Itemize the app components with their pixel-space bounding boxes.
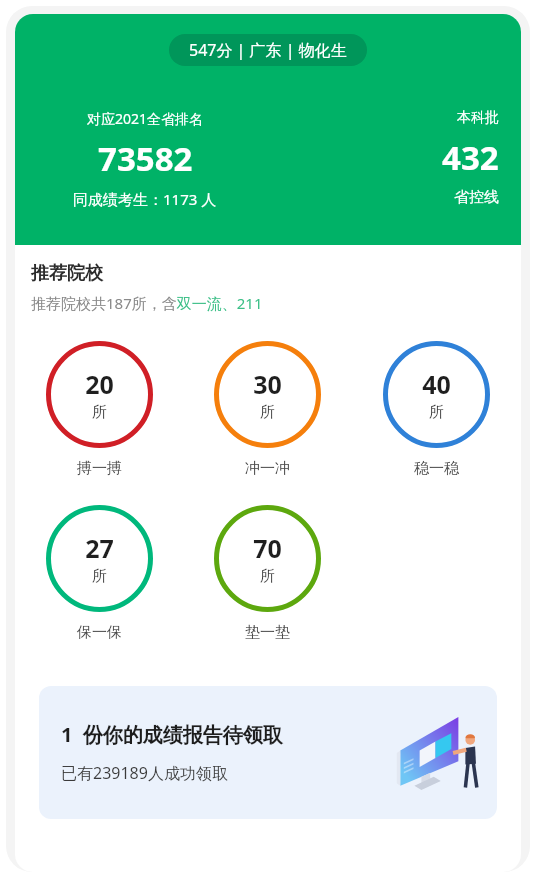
staticText: 稳一稳 (414, 459, 459, 478)
staticText: 已有239189人成功领取 (61, 762, 228, 784)
staticText: 30 (253, 367, 282, 401)
staticText: 对应2021全省排名 (87, 109, 204, 128)
button[interactable]: 1 份你的成绩报告待领取 (39, 686, 497, 819)
staticText: 所 (92, 403, 107, 422)
staticText: 保一保 (77, 623, 122, 642)
staticText: 所 (260, 567, 275, 586)
staticText: 1 份你的成绩报告待领取 (61, 721, 283, 748)
button[interactable]: 20 (15, 341, 183, 478)
staticText: 27 (85, 531, 114, 565)
button[interactable]: 70 (183, 505, 352, 642)
staticText: 70 (253, 531, 282, 565)
staticText: 20 (85, 367, 114, 401)
staticText: 省控线 (454, 188, 499, 207)
staticText: 同成绩考生：1173 人 (73, 189, 217, 209)
staticText: 73582 (98, 136, 193, 181)
staticText: 本科批 (457, 109, 499, 127)
button[interactable]: 40 (352, 341, 521, 478)
staticText: 所 (260, 403, 275, 422)
staticText: 所 (92, 567, 107, 586)
other: 成绩报告 (395, 712, 483, 794)
staticText: 搏一搏 (77, 459, 122, 478)
staticText: 冲一冲 (245, 459, 290, 478)
button[interactable]: 27 (15, 505, 183, 642)
button[interactable]: 30 (183, 341, 352, 478)
staticText: 推荐院校 (31, 262, 103, 285)
staticText: 推荐院校共187所，含双一流、211 (31, 293, 263, 313)
staticText: 40 (422, 367, 451, 401)
staticText: 垫一垫 (245, 623, 290, 642)
staticText: 432 (442, 135, 499, 180)
staticText: 所 (429, 403, 444, 422)
staticText: 547分 | 广东 | 物化生 (189, 39, 347, 61)
button[interactable]: 547分 | 广东 | 物化生 (169, 34, 367, 66)
